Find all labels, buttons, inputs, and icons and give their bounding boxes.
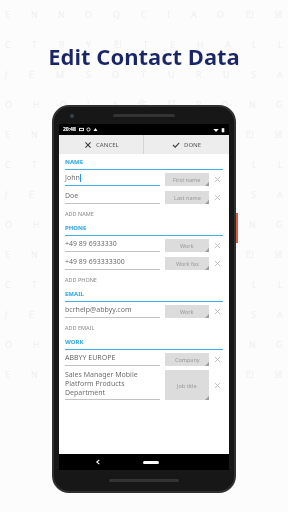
staticText: L: [278, 278, 283, 290]
button[interactable]: Remove field: [212, 240, 223, 251]
button[interactable]: Job title: [165, 370, 209, 400]
button[interactable]: Sales Manager Mobile Platform Products D…: [65, 368, 223, 402]
staticText: R: [59, 38, 65, 50]
staticText: B: [196, 338, 202, 350]
button[interactable]: ADD NAME: [65, 206, 223, 220]
button[interactable]: CANCEL: [59, 135, 143, 154]
staticText: M: [56, 68, 65, 80]
staticText: H: [33, 338, 40, 350]
staticText: R: [196, 188, 202, 200]
staticText: O: [221, 98, 229, 110]
button[interactable]: Remove field: [212, 306, 223, 317]
staticText: L: [87, 338, 92, 350]
staticText: A: [191, 368, 197, 380]
button[interactable]: Company: [165, 353, 209, 366]
staticText: O: [60, 218, 68, 230]
staticText: 녕: [274, 368, 283, 379]
staticText: ADD EMAIL: [65, 324, 95, 331]
staticText: C: [141, 248, 147, 260]
staticText: CANCEL: [96, 141, 119, 149]
staticText: C: [141, 128, 147, 140]
staticText: H: [33, 218, 40, 230]
staticText: N: [249, 98, 256, 110]
staticText: ADD PHONE: [65, 276, 97, 283]
staticText: E: [29, 308, 35, 320]
staticText: J: [5, 68, 8, 80]
staticText: First name: [173, 176, 201, 183]
staticText: A: [191, 8, 197, 20]
staticText: N: [31, 8, 38, 20]
button[interactable]: +49 89 6933330: [65, 236, 223, 254]
staticText: 안: [245, 128, 254, 139]
button[interactable]: Work: [165, 239, 209, 252]
staticText: 你: [138, 98, 147, 109]
staticText: M: [56, 308, 65, 320]
button[interactable]: First name: [165, 173, 209, 186]
staticText: Y: [86, 158, 92, 170]
staticText: E: [5, 8, 11, 20]
button[interactable]: bcrhelp@abbyy.com: [65, 302, 223, 320]
staticText: E: [29, 188, 35, 200]
staticText: G: [276, 338, 283, 350]
staticText: C: [5, 158, 11, 170]
button[interactable]: ADD PHONE: [65, 272, 223, 286]
button[interactable]: Work fax: [165, 257, 209, 270]
staticText: N: [58, 368, 65, 380]
staticText: 안: [245, 368, 254, 379]
staticText: Q: [113, 8, 121, 20]
staticText: O: [60, 98, 68, 110]
button[interactable]: Back: [91, 455, 105, 469]
button[interactable]: ABBYY EUROPE: [65, 350, 223, 368]
staticText: Work fax: [176, 260, 199, 267]
button[interactable]: John: [65, 170, 223, 188]
staticText: S: [251, 308, 256, 320]
staticText: Q: [113, 128, 121, 140]
button[interactable]: Home: [143, 461, 159, 464]
staticText: Sales Manager Mobile Platform Products D…: [65, 370, 138, 397]
staticText: John: [65, 173, 80, 183]
staticText: 힌: [113, 38, 122, 49]
staticText: U: [223, 68, 230, 80]
staticText: ABBYY EUROPE: [65, 353, 116, 363]
staticText: T: [141, 68, 147, 80]
staticText: J: [5, 188, 8, 200]
button[interactable]: Remove field: [212, 174, 223, 185]
staticText: S: [251, 188, 256, 200]
button[interactable]: +49 89 693333300: [65, 254, 223, 272]
staticText: H: [197, 158, 204, 170]
button[interactable]: Remove field: [212, 380, 223, 391]
staticText: O: [5, 338, 13, 350]
staticText: 안: [245, 8, 254, 19]
staticText: Edit Contact Data: [48, 41, 240, 71]
button[interactable]: Remove field: [212, 258, 223, 269]
staticText: O: [5, 98, 13, 110]
staticText: C: [5, 278, 11, 290]
staticText: I: [167, 248, 171, 260]
staticText: S: [86, 68, 91, 80]
button[interactable]: Remove field: [212, 192, 223, 203]
button[interactable]: DONE: [144, 135, 229, 154]
staticText: 녕: [274, 8, 283, 19]
staticText: L: [278, 38, 283, 50]
staticText: A: [277, 68, 283, 80]
staticText: N: [31, 248, 38, 260]
button[interactable]: Last name: [165, 191, 209, 204]
staticText: N: [249, 338, 256, 350]
staticText: O: [85, 128, 93, 140]
button[interactable]: Remove field: [212, 354, 223, 365]
staticText: E: [5, 368, 11, 380]
button[interactable]: Doe: [65, 188, 223, 206]
staticText: U: [223, 188, 230, 200]
staticText: O: [217, 8, 225, 20]
button[interactable]: Work: [165, 305, 209, 318]
staticText: E: [170, 158, 176, 170]
button[interactable]: ADD EMAIL: [65, 320, 223, 334]
